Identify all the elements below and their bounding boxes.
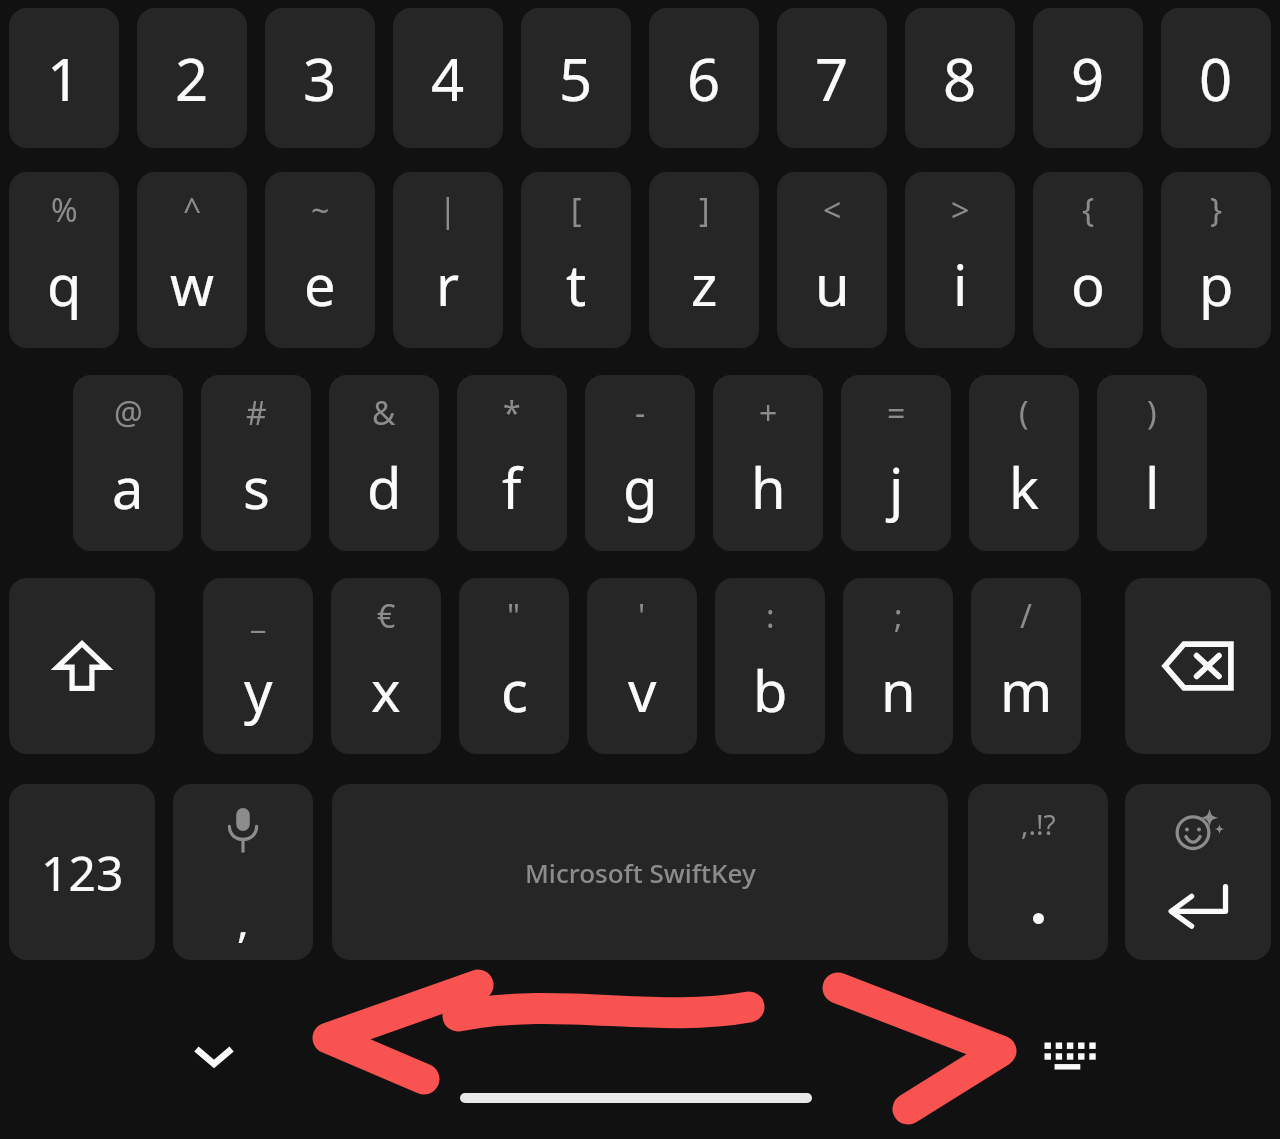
staticText: 5 [559,39,593,118]
button[interactable]: = [841,375,951,551]
staticText: ; [894,594,903,638]
button[interactable]: 1 [9,8,119,148]
staticText: 3 [303,39,337,118]
button[interactable]: Microsoft SwiftKey [332,784,948,960]
staticText: ~ [311,188,330,232]
staticText: , [237,890,249,950]
staticText: v [628,652,657,728]
button[interactable]: Emoji and enter [1125,784,1271,960]
button[interactable]: Shift [9,578,155,754]
staticText: ^ [183,188,202,232]
button[interactable]: 2 [137,8,247,148]
button[interactable]: { [1033,172,1143,348]
button[interactable]: } [1161,172,1271,348]
button[interactable]: ' [587,578,697,754]
staticText: ( [1019,391,1029,435]
button[interactable]: : [715,578,825,754]
staticText: + [759,391,778,435]
staticText: s [243,449,270,525]
staticText: u [815,246,850,322]
staticText: g [623,449,658,525]
staticText: n [881,652,916,728]
button[interactable]: [ [521,172,631,348]
staticText: * [503,391,521,435]
staticText: < [823,188,842,232]
staticText: w [170,246,215,322]
staticText: ,.!? [1021,805,1056,843]
button[interactable]: ,.!? [968,784,1108,960]
staticText: f [502,449,522,525]
staticText: ] [699,188,710,232]
staticText: t [566,246,587,322]
button[interactable]: ; [843,578,953,754]
staticText: € [377,594,396,638]
button[interactable]: # [201,375,311,551]
button[interactable]: 123 [9,784,155,960]
staticText: } [1210,188,1223,232]
button[interactable]: 9 [1033,8,1143,148]
button[interactable]: € [331,578,441,754]
staticText: i [953,246,968,322]
staticText: - [635,391,646,435]
button[interactable]: 5 [521,8,631,148]
staticText: 7 [815,39,849,118]
button[interactable]: 3 [265,8,375,148]
button[interactable]: ) [1097,375,1207,551]
button[interactable]: + [713,375,823,551]
staticText: / [1020,594,1032,638]
button[interactable]: | [393,172,503,348]
staticText: 2 [175,39,209,118]
staticText: e [304,246,336,322]
button[interactable]: Hide keyboard [186,1034,242,1078]
staticText: % [51,188,78,232]
button[interactable]: ] [649,172,759,348]
button[interactable]: _ [203,578,313,754]
button[interactable]: ~ [265,172,375,348]
button[interactable]: 8 [905,8,1015,148]
staticText: x [371,652,401,728]
staticText: 123 [41,840,124,905]
button[interactable]: 6 [649,8,759,148]
staticText: & [372,391,396,435]
button[interactable]: % [9,172,119,348]
staticText: 4 [431,39,465,118]
staticText: [ [571,188,582,232]
staticText: 6 [687,39,721,118]
staticText: { [1082,188,1095,232]
button[interactable]: > [905,172,1015,348]
staticText: _ [251,594,266,638]
staticText: # [246,391,267,435]
button[interactable]: ( [969,375,1079,551]
staticText: 9 [1071,39,1105,118]
staticText: = [887,391,906,435]
staticText: b [753,652,788,728]
button[interactable]: ^ [137,172,247,348]
button[interactable]: - [585,375,695,551]
button[interactable]: 7 [777,8,887,148]
staticText: > [951,188,970,232]
staticText: ' [638,594,646,638]
button[interactable]: 4 [393,8,503,148]
button[interactable]: @ [73,375,183,551]
staticText: k [1009,449,1039,525]
button[interactable]: Voice input and comma [173,784,313,960]
button[interactable]: & [329,375,439,551]
staticText: " [507,594,521,638]
staticText: q [47,246,82,322]
button[interactable]: 0 [1161,8,1271,148]
button[interactable]: < [777,172,887,348]
staticText: | [439,188,457,232]
staticText: c [501,652,528,728]
staticText: h [751,449,786,525]
staticText: 8 [943,39,977,118]
button[interactable]: " [459,578,569,754]
button[interactable]: Backspace [1125,578,1271,754]
button[interactable]: / [971,578,1081,754]
staticText: 0 [1199,39,1233,118]
button[interactable]: * [457,375,567,551]
staticText: ) [1147,391,1157,435]
staticText: : [766,594,775,638]
button[interactable]: Switch keyboard [1036,1030,1100,1078]
staticText: a [112,449,144,525]
staticText: r [436,246,460,322]
